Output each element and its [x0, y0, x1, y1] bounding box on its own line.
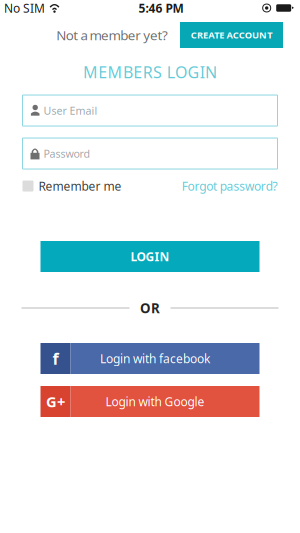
staticText: G+ [46, 392, 65, 411]
staticText: Not a member yet? [56, 26, 168, 44]
staticText: User Email [43, 103, 97, 118]
button[interactable]: Forgot password? [182, 178, 277, 194]
staticText: 5:46 PM [139, 0, 184, 16]
button[interactable]: CREATE ACCOUNT [180, 22, 283, 48]
staticText: MEMBERS LOGIN [83, 61, 217, 83]
staticText: LOGIN [130, 248, 169, 264]
staticText: No SIM [4, 0, 45, 16]
button[interactable]: f [40, 343, 259, 374]
staticText: Forgot password? [182, 178, 277, 194]
button[interactable]: G+ [40, 386, 259, 417]
staticText: Remember me [38, 178, 121, 194]
button[interactable]: User Email [22, 95, 277, 126]
staticText: Login with facebook [100, 350, 210, 366]
staticText: Login with Google [105, 393, 204, 409]
staticText: OR [140, 299, 160, 317]
button[interactable]: Remember me [22, 178, 121, 194]
button[interactable]: LOGIN [40, 241, 259, 272]
staticText: CREATE ACCOUNT [191, 29, 272, 41]
staticText: f [52, 348, 58, 369]
staticText: Password [43, 146, 90, 161]
button[interactable]: Password [22, 138, 277, 169]
